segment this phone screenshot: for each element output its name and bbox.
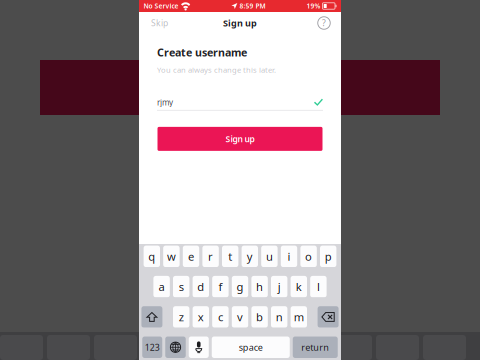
button[interactable]: k <box>291 276 307 297</box>
staticText: f <box>218 279 222 294</box>
button[interactable]: Delete <box>318 306 339 328</box>
button[interactable]: r <box>202 246 219 267</box>
button[interactable]: o <box>300 246 317 267</box>
staticText: u <box>266 249 273 264</box>
button[interactable]: 123 <box>142 336 162 358</box>
button[interactable]: v <box>232 306 248 328</box>
button[interactable]: z <box>173 306 189 328</box>
button[interactable]: x <box>193 306 209 328</box>
button[interactable]: g <box>232 276 248 297</box>
button[interactable]: c <box>212 306 229 328</box>
button[interactable]: b <box>251 306 268 328</box>
staticText: n <box>276 309 283 325</box>
button[interactable]: return <box>293 336 338 358</box>
staticText: a <box>159 279 165 294</box>
staticText: l <box>317 279 320 294</box>
button[interactable]: y <box>242 246 258 267</box>
button[interactable]: t <box>222 246 238 267</box>
staticText: z <box>179 309 184 325</box>
staticText: g <box>236 279 243 294</box>
button[interactable]: h <box>251 276 268 297</box>
staticText: 19% <box>306 1 320 11</box>
button[interactable]: u <box>261 246 278 267</box>
button[interactable]: m <box>291 306 307 328</box>
staticText: x <box>198 309 204 325</box>
staticText: y <box>247 249 253 264</box>
staticText: e <box>188 249 194 264</box>
staticText: ? <box>322 17 326 29</box>
staticText: Sign up <box>225 133 254 145</box>
staticText: o <box>305 249 312 264</box>
button[interactable]: Shift <box>141 306 162 328</box>
button[interactable]: i <box>281 246 297 267</box>
staticText: space <box>239 341 263 353</box>
staticText: w <box>167 249 176 264</box>
staticText: r <box>208 249 213 264</box>
button[interactable]: Next keyboard <box>165 336 186 358</box>
button[interactable]: d <box>193 276 209 297</box>
button[interactable]: Sign up <box>157 127 322 151</box>
button[interactable]: w <box>163 246 180 267</box>
button[interactable]: Help <box>316 14 332 32</box>
button[interactable]: space <box>212 336 290 358</box>
button[interactable]: l <box>310 276 327 297</box>
staticText: 123 <box>145 341 160 353</box>
staticText: b <box>256 309 263 325</box>
staticText: Sign up <box>223 17 257 29</box>
button[interactable]: f <box>212 276 229 297</box>
staticText: s <box>179 279 184 294</box>
staticText: 8:59 PM <box>239 1 265 11</box>
staticText: k <box>296 279 302 294</box>
button[interactable]: q <box>144 246 160 267</box>
staticText: No Service <box>143 1 178 11</box>
staticText: h <box>256 279 263 294</box>
staticText: m <box>294 309 304 325</box>
staticText: rjmy <box>157 97 173 108</box>
staticText: i <box>287 249 290 264</box>
button[interactable]: p <box>320 246 336 267</box>
button[interactable]: n <box>271 306 287 328</box>
staticText: You can always change this later. <box>157 64 276 75</box>
staticText: t <box>228 249 232 264</box>
button[interactable]: j <box>271 276 287 297</box>
staticText: d <box>197 279 204 294</box>
staticText: Skip <box>151 17 168 29</box>
staticText: j <box>278 279 281 294</box>
staticText: v <box>237 309 243 325</box>
button[interactable]: Skip <box>148 12 171 34</box>
staticText: q <box>148 249 155 264</box>
staticText: c <box>218 309 223 325</box>
button[interactable]: a <box>153 276 170 297</box>
button[interactable]: e <box>183 246 199 267</box>
staticText: Create username <box>157 45 247 59</box>
button[interactable]: s <box>173 276 189 297</box>
button[interactable]: Dictate <box>189 336 209 358</box>
staticText: p <box>325 249 332 264</box>
staticText: return <box>301 341 329 353</box>
